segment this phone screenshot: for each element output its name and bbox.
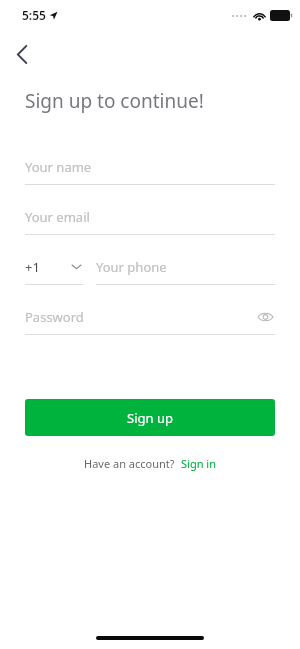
- button[interactable]: Your email: [25, 206, 275, 235]
- button[interactable]: Show password: [255, 307, 275, 327]
- button[interactable]: Your name: [25, 156, 275, 185]
- button[interactable]: Your phone: [96, 256, 275, 285]
- staticText: Your phone: [96, 258, 167, 276]
- staticText: Your email: [25, 208, 90, 226]
- button[interactable]: Sign up: [25, 399, 275, 436]
- button[interactable]: Password: [25, 306, 275, 335]
- button[interactable]: +1: [25, 256, 83, 285]
- button[interactable]: Sign in: [181, 456, 216, 471]
- staticText: 5:55: [22, 7, 46, 23]
- staticText: Sign in: [181, 456, 216, 471]
- staticText: Have an account?: [84, 456, 175, 471]
- staticText: Sign up: [127, 409, 173, 427]
- staticText: Password: [25, 308, 84, 326]
- staticText: Sign up to continue!: [25, 88, 204, 114]
- button[interactable]: Back: [6, 38, 38, 70]
- staticText: Your name: [25, 158, 92, 176]
- staticText: +1: [25, 258, 40, 276]
